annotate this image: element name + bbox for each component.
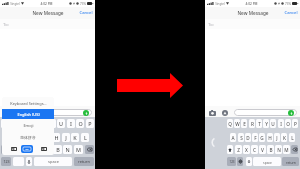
button[interactable]: J	[274, 133, 280, 142]
button[interactable]: E	[241, 119, 247, 128]
button[interactable]: G	[259, 133, 265, 142]
button[interactable]: M	[74, 145, 83, 154]
button[interactable]: Y	[48, 119, 56, 128]
button[interactable]: Dictation	[26, 157, 32, 166]
button[interactable]: E	[19, 119, 27, 128]
button[interactable]: U	[57, 119, 65, 128]
staticText: Cancel	[79, 10, 93, 16]
staticText: I	[70, 120, 72, 127]
button[interactable]: App Store	[16, 110, 23, 116]
button[interactable]: Z	[11, 145, 20, 154]
staticText: space	[263, 160, 272, 164]
button[interactable]: B	[267, 145, 274, 154]
button[interactable]: W	[234, 119, 240, 128]
button[interactable]: Keyboard Settings...	[2, 97, 54, 109]
button[interactable]: Camera	[209, 110, 216, 116]
button[interactable]: R	[29, 119, 37, 128]
button[interactable]: Cancel	[284, 7, 298, 19]
button[interactable]: H	[267, 133, 273, 142]
button[interactable]: K	[281, 133, 287, 142]
button[interactable]: R	[249, 119, 255, 128]
button[interactable]	[234, 109, 297, 116]
button[interactable]: M	[283, 145, 290, 154]
button[interactable]: L	[81, 133, 89, 142]
button[interactable]: Shift	[227, 145, 233, 154]
staticText: W	[235, 121, 240, 127]
button[interactable]: 123	[227, 157, 236, 166]
button[interactable]: Backspace	[291, 145, 298, 154]
staticText: 123	[229, 160, 235, 164]
button[interactable]: I	[278, 119, 284, 128]
button[interactable]: Y	[263, 119, 269, 128]
button[interactable]: space	[253, 157, 281, 166]
button[interactable]: Input mode	[10, 145, 17, 153]
button[interactable]: Q	[227, 119, 233, 128]
staticText: space	[48, 159, 59, 164]
button[interactable]: S	[15, 133, 23, 142]
button[interactable]: return	[74, 157, 94, 166]
staticText: B	[269, 147, 273, 153]
button[interactable]: U	[270, 119, 276, 128]
button[interactable]: App Store	[221, 110, 228, 116]
button[interactable]: To:	[205, 19, 300, 29]
button[interactable]: Send	[288, 110, 294, 116]
button[interactable]: L	[289, 133, 295, 142]
button[interactable]: 123	[1, 157, 11, 166]
button[interactable]: Backspace	[85, 145, 94, 154]
button[interactable]: B	[53, 145, 62, 154]
button[interactable]: Dictation	[246, 157, 252, 166]
button[interactable]: Z	[235, 145, 242, 154]
button[interactable]: To:	[0, 19, 95, 29]
staticText: To:	[3, 22, 9, 27]
button[interactable]: Send	[83, 110, 89, 116]
button[interactable]: Switch keyboard	[13, 157, 24, 166]
button[interactable]: D	[24, 133, 32, 142]
button[interactable]: Input mode	[40, 145, 47, 153]
button[interactable]: D	[245, 133, 251, 142]
button[interactable]: I	[67, 119, 75, 128]
staticText: M	[76, 146, 81, 153]
button[interactable]: Input mode	[21, 145, 33, 153]
staticText: D	[246, 135, 250, 141]
button[interactable]: S	[238, 133, 244, 142]
button[interactable]: O	[285, 119, 291, 128]
button[interactable]: F	[252, 133, 258, 142]
button[interactable]: H	[52, 133, 60, 142]
button[interactable]	[29, 109, 92, 116]
button[interactable]: N	[275, 145, 282, 154]
button[interactable]: English (US)	[2, 109, 54, 119]
button[interactable]: Switch keyboard	[237, 157, 243, 166]
button[interactable]: A	[230, 133, 236, 142]
button[interactable]: F	[34, 133, 42, 142]
button[interactable]: P	[292, 119, 298, 128]
button[interactable]: C	[251, 145, 258, 154]
button[interactable]: O	[76, 119, 84, 128]
button[interactable]: C	[32, 145, 41, 154]
button[interactable]: N	[63, 145, 72, 154]
button[interactable]: P	[86, 119, 94, 128]
button[interactable]: V	[43, 145, 52, 154]
button[interactable]: space	[34, 157, 72, 166]
button[interactable]: X	[243, 145, 250, 154]
button[interactable]: Shift	[1, 145, 11, 154]
button[interactable]: V	[259, 145, 266, 154]
staticText: Z	[237, 147, 240, 153]
button[interactable]: Emoji	[2, 119, 54, 131]
button[interactable]: return	[282, 157, 299, 166]
button[interactable]: Cancel	[79, 7, 93, 19]
button[interactable]: X	[22, 145, 31, 154]
button[interactable]: Q	[1, 119, 9, 128]
staticText: M	[284, 147, 289, 153]
button[interactable]: J	[62, 133, 70, 142]
button[interactable]: T	[256, 119, 262, 128]
button[interactable]: 简体拼音	[2, 131, 54, 143]
button[interactable]: K	[71, 133, 79, 142]
staticText: G	[260, 135, 264, 141]
